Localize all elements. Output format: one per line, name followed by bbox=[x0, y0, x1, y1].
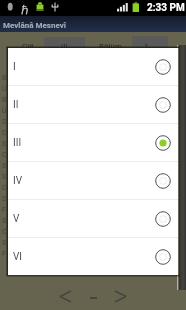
staticText: 2:33 PM bbox=[147, 2, 185, 14]
staticText: II bbox=[13, 99, 19, 111]
staticText: III bbox=[13, 137, 22, 149]
staticText: Cilt bbox=[22, 42, 34, 51]
staticText: Bölüm bbox=[99, 42, 122, 51]
staticText: B bbox=[2, 96, 7, 104]
button[interactable]: IV bbox=[8, 162, 178, 199]
staticText: ℏ bbox=[21, 1, 29, 17]
button[interactable]: II bbox=[8, 86, 178, 123]
staticText: S bbox=[2, 195, 7, 203]
staticText: S bbox=[2, 239, 7, 247]
staticText: Ü bbox=[2, 85, 7, 93]
button[interactable]: III bbox=[44, 37, 85, 50]
staticText: B bbox=[2, 74, 7, 82]
staticText: C bbox=[2, 228, 7, 236]
staticText: V bbox=[13, 213, 20, 225]
staticText: 1 bbox=[144, 42, 149, 51]
button[interactable]: Home bbox=[81, 286, 105, 310]
button[interactable]: Back bbox=[53, 284, 78, 309]
staticText: C bbox=[2, 151, 7, 159]
staticText: F bbox=[2, 250, 6, 258]
staticText: S bbox=[2, 140, 7, 148]
button[interactable]: VI bbox=[8, 238, 178, 275]
staticText: S bbox=[2, 217, 7, 225]
staticText: C bbox=[2, 184, 7, 192]
button[interactable]: Forward bbox=[108, 284, 133, 309]
staticText: I bbox=[13, 61, 16, 73]
button[interactable]: 1 bbox=[132, 36, 168, 50]
button[interactable]: I bbox=[8, 48, 178, 85]
staticText: Ü bbox=[2, 107, 7, 115]
staticText: III bbox=[61, 42, 68, 51]
staticText: Mevlânâ Mesnevî bbox=[3, 21, 66, 30]
staticText: VI bbox=[13, 251, 23, 263]
staticText: S bbox=[2, 118, 7, 126]
staticText: IV bbox=[13, 175, 23, 187]
staticText: F bbox=[2, 206, 6, 214]
button[interactable]: V bbox=[8, 200, 178, 237]
button[interactable]: III bbox=[8, 124, 178, 161]
staticText: S bbox=[2, 162, 7, 170]
staticText: S bbox=[2, 173, 7, 181]
staticText: C bbox=[2, 129, 7, 137]
